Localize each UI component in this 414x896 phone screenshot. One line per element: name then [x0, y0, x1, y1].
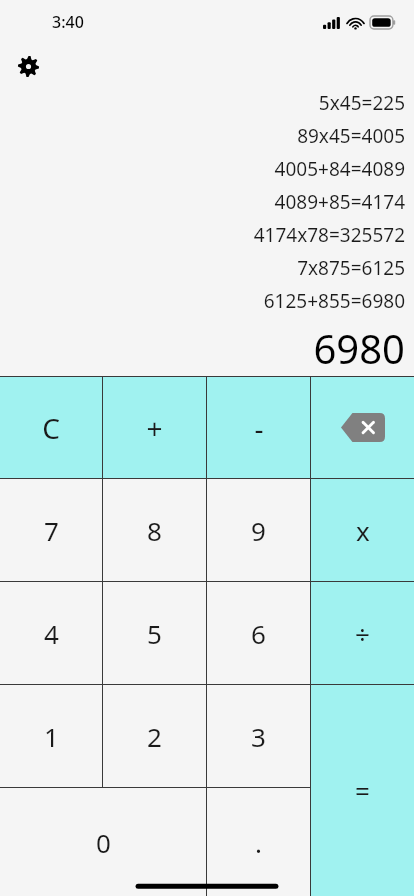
staticText: 4 — [44, 616, 59, 651]
button[interactable]: x — [311, 479, 414, 581]
staticText: x — [356, 513, 370, 548]
staticText: . — [255, 825, 262, 860]
button[interactable]: 0 — [0, 788, 206, 896]
staticText: 6980 — [313, 321, 405, 375]
staticText: 5x45=225 — [318, 90, 405, 116]
staticText: 4174x78=325572 — [253, 222, 405, 248]
staticText: 6125+855=6980 — [263, 288, 405, 314]
button[interactable]: 9 — [207, 479, 310, 581]
staticText: ÷ — [355, 616, 370, 651]
staticText: 7x875=6125 — [297, 255, 405, 281]
staticText: 4089+85=4174 — [274, 189, 405, 215]
staticText: + — [146, 409, 163, 447]
button[interactable]: 7 — [0, 479, 102, 581]
staticText: = — [355, 773, 370, 808]
button[interactable]: Settings — [10, 48, 46, 84]
staticText: 0 — [96, 825, 111, 860]
button[interactable]: C — [0, 377, 102, 478]
button[interactable]: - — [207, 377, 310, 478]
staticText: 7 — [44, 513, 59, 548]
button[interactable]: 3 — [207, 685, 310, 787]
staticText: 6 — [251, 616, 266, 651]
staticText: 1 — [44, 719, 59, 754]
staticText: - — [254, 409, 264, 447]
button[interactable]: + — [103, 377, 206, 478]
staticText: 8 — [147, 513, 162, 548]
staticText: C — [42, 409, 60, 447]
staticText: 4005+84=4089 — [274, 156, 405, 182]
staticText: 89x45=4005 — [297, 123, 405, 149]
staticText: 9 — [251, 513, 266, 548]
button[interactable]: 5 — [103, 582, 206, 684]
button[interactable]: 1 — [0, 685, 102, 787]
button[interactable]: = — [311, 685, 414, 896]
staticText: 3 — [251, 719, 266, 754]
button[interactable]: . — [207, 788, 310, 896]
button[interactable]: 6 — [207, 582, 310, 684]
button[interactable]: 8 — [103, 479, 206, 581]
button[interactable]: ÷ — [311, 582, 414, 684]
button[interactable]: Backspace — [311, 377, 414, 478]
staticText: 2 — [147, 719, 162, 754]
button[interactable]: 2 — [103, 685, 206, 787]
staticText: 5 — [147, 616, 162, 651]
button[interactable]: 4 — [0, 582, 102, 684]
staticText: 3:40 — [52, 11, 84, 33]
